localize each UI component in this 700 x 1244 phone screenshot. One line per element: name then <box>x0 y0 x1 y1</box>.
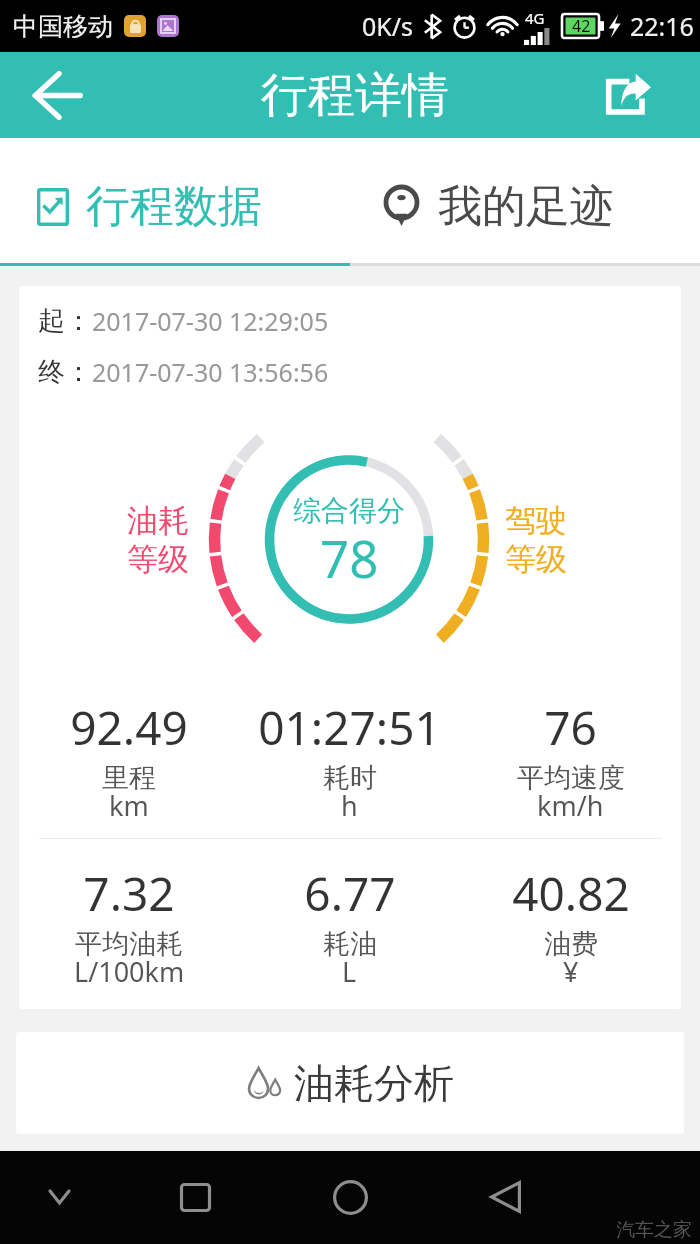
staticText: 汽车之家 <box>616 1218 692 1242</box>
staticText: 行程详情 <box>261 66 449 125</box>
staticText: 2017-07-30 13:56:56 <box>92 355 329 389</box>
staticText: 0K/s <box>362 9 414 43</box>
staticText: 行程数据 <box>86 179 262 234</box>
staticText: L <box>342 953 357 990</box>
staticText: 40.82 <box>512 862 630 925</box>
button[interactable]: Recent apps <box>165 1167 225 1227</box>
button[interactable]: 油耗分析 <box>16 1032 684 1134</box>
staticText: 驾驶 <box>505 501 567 540</box>
staticText: 76 <box>544 696 597 759</box>
staticText: 7.32 <box>83 862 175 925</box>
staticText: 综合得分 <box>293 493 405 528</box>
staticText: 中国移动 <box>13 11 113 42</box>
staticText: 油耗 <box>127 501 189 540</box>
staticText: 起： <box>38 304 92 338</box>
staticText: 耗油 <box>323 927 377 961</box>
staticText: 等级 <box>505 540 567 579</box>
button[interactable]: Back <box>475 1167 535 1227</box>
button[interactable]: Home <box>320 1167 380 1227</box>
staticText: 2017-07-30 12:29:05 <box>92 304 329 338</box>
staticText: L/100km <box>74 953 185 990</box>
staticText: km/h <box>537 787 604 824</box>
button[interactable]: 我的足迹 <box>350 138 700 263</box>
staticText: 平均油耗 <box>75 927 183 961</box>
staticText: 22:16 <box>630 9 694 43</box>
staticText: 油费 <box>544 927 598 961</box>
button[interactable]: Share <box>591 54 665 132</box>
staticText: 终： <box>38 355 92 389</box>
staticText: 我的足迹 <box>438 179 614 234</box>
staticText: 里程 <box>102 761 156 795</box>
staticText: 01:27:51 <box>258 696 441 759</box>
staticText: 平均速度 <box>517 761 625 795</box>
staticText: 6.77 <box>304 862 396 925</box>
staticText: 4G <box>525 8 545 28</box>
staticText: ¥ <box>563 953 579 990</box>
staticText: 92.49 <box>70 696 188 759</box>
staticText: 42 <box>572 15 591 37</box>
button[interactable]: Hide keyboard <box>29 1167 89 1227</box>
staticText: 等级 <box>127 540 189 579</box>
button[interactable]: Back <box>19 56 95 134</box>
staticText: 耗时 <box>323 761 377 795</box>
staticText: 油耗分析 <box>294 1058 454 1108</box>
staticText: 78 <box>320 523 379 592</box>
staticText: h <box>341 787 358 824</box>
button[interactable]: 行程数据 <box>0 138 350 263</box>
staticText: km <box>109 787 149 824</box>
